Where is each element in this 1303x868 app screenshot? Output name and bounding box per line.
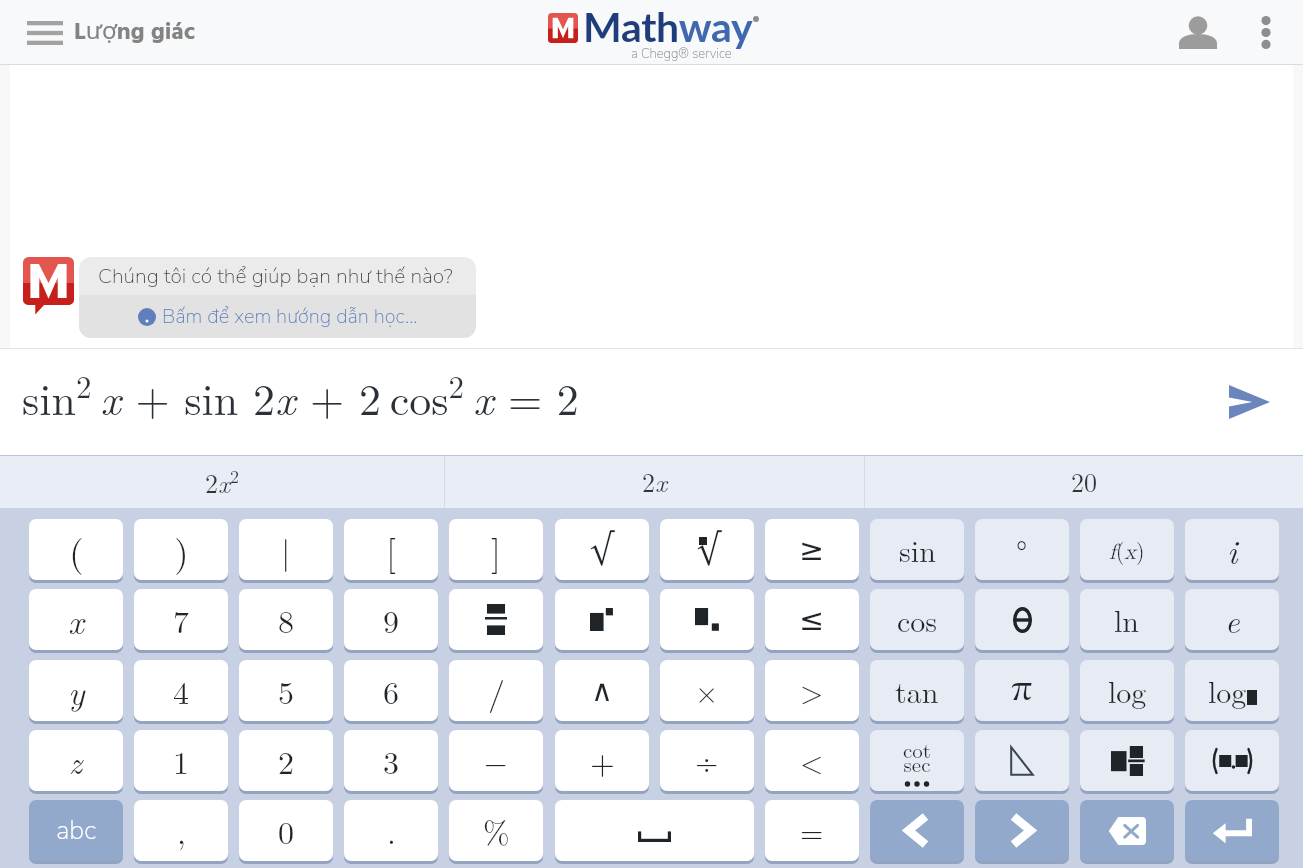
button[interactable]: ln <box>1080 589 1174 650</box>
staticText: 3 <box>383 738 400 783</box>
button[interactable]: ≤ <box>765 589 859 650</box>
button[interactable]: Triangle <box>975 730 1069 791</box>
staticText: sin <box>899 528 936 571</box>
staticText: √ <box>590 535 614 565</box>
button[interactable]: √ <box>555 519 649 580</box>
staticText: ) <box>174 523 189 577</box>
staticText: [ <box>386 524 397 575</box>
staticText: 8 <box>278 597 295 642</box>
staticText: e <box>1225 597 1240 642</box>
staticText: Chúng tôi có thể giúp bạn như thế nào? <box>98 262 453 291</box>
button[interactable]: > <box>765 660 859 721</box>
button[interactable]: . <box>344 800 438 861</box>
staticText: > <box>800 669 824 712</box>
staticText: cot sec <box>903 734 931 778</box>
staticText: 2 <box>278 738 295 783</box>
staticText: f(x) <box>1109 534 1145 565</box>
button[interactable]: i <box>1185 519 1279 580</box>
button[interactable]: Point <box>1185 730 1279 791</box>
button[interactable]: × <box>660 660 754 721</box>
button[interactable]: , <box>134 800 228 861</box>
button[interactable]: f(x) <box>1080 519 1174 580</box>
button[interactable]: 2 <box>239 730 333 791</box>
staticText: 1 <box>173 738 190 783</box>
staticText: = <box>800 809 824 852</box>
staticText: π <box>1011 673 1033 709</box>
button[interactable]: 2x2 <box>0 455 444 508</box>
button[interactable]: 8 <box>239 589 333 650</box>
button[interactable]: ÷ <box>660 730 754 791</box>
button[interactable]: x <box>29 589 123 650</box>
button[interactable]: Send <box>1214 367 1284 437</box>
button[interactable]: Lượng giác <box>0 5 209 60</box>
button[interactable]: ( <box>29 519 123 580</box>
staticText: . <box>387 808 396 853</box>
button[interactable]: ° <box>975 519 1069 580</box>
button[interactable]: More options <box>1240 0 1292 65</box>
staticText: Lượng giác <box>74 13 195 52</box>
button[interactable]: 0 <box>239 800 333 861</box>
button[interactable] <box>660 589 754 650</box>
button[interactable]: abc <box>29 800 123 861</box>
button[interactable]: cot sec <box>870 730 964 791</box>
button[interactable] <box>555 589 649 650</box>
staticText: cos <box>897 598 938 641</box>
staticText: z <box>69 738 83 783</box>
button[interactable]: 1 <box>134 730 228 791</box>
button[interactable]: % <box>449 800 543 861</box>
button[interactable]: ] <box>449 519 543 580</box>
button[interactable]: 6 <box>344 660 438 721</box>
staticText: 2x2 <box>205 463 240 501</box>
button[interactable]: 9 <box>344 589 438 650</box>
button[interactable]: [ <box>344 519 438 580</box>
staticText: − <box>484 739 508 782</box>
button[interactable]: = <box>765 800 859 861</box>
staticText: 7 <box>173 597 190 642</box>
button[interactable]: / <box>449 660 543 721</box>
button[interactable]: log <box>1185 660 1279 721</box>
button[interactable]: | <box>239 519 333 580</box>
button[interactable]: − <box>449 730 543 791</box>
button[interactable]: e <box>1185 589 1279 650</box>
staticText: < <box>800 739 824 782</box>
button[interactable]: 4 <box>134 660 228 721</box>
staticText: log <box>1108 669 1147 712</box>
button[interactable]: Bấm để xem hướng dẫn học... <box>79 295 476 338</box>
button[interactable]: log <box>1080 660 1174 721</box>
button[interactable]: 3 <box>344 730 438 791</box>
button[interactable] <box>449 589 543 650</box>
button[interactable]: 7 <box>134 589 228 650</box>
button[interactable]: π <box>975 660 1069 721</box>
button[interactable]: Enter <box>1185 800 1279 861</box>
button[interactable]: Backspace <box>1080 800 1174 861</box>
staticText: y <box>68 667 85 715</box>
staticText: + <box>590 738 615 783</box>
button[interactable]: y <box>29 660 123 721</box>
button[interactable]: cos <box>870 589 964 650</box>
button[interactable]: sin <box>870 519 964 580</box>
button[interactable]: 20 <box>865 455 1303 508</box>
button[interactable]: ) <box>134 519 228 580</box>
button[interactable]: Move left <box>870 800 964 861</box>
button[interactable]: Matrix <box>1080 730 1174 791</box>
button[interactable]: Space <box>555 800 754 861</box>
button[interactable]: tan <box>870 660 964 721</box>
button[interactable]: ∧ <box>555 660 649 721</box>
button[interactable]: + <box>555 730 649 791</box>
staticText: 6 <box>383 668 400 713</box>
button[interactable]: < <box>765 730 859 791</box>
button[interactable]: Theta <box>975 589 1069 650</box>
button[interactable]: z <box>29 730 123 791</box>
staticText: ÷ <box>695 739 719 782</box>
button[interactable]: 5 <box>239 660 333 721</box>
staticText: × <box>695 669 719 712</box>
button[interactable]: ≥ <box>765 519 859 580</box>
button[interactable]: √ <box>660 519 754 580</box>
button[interactable]: 2x <box>445 455 864 508</box>
button[interactable]: Move right <box>975 800 1069 861</box>
staticText: i <box>1227 526 1238 574</box>
button[interactable]: Account <box>1166 0 1230 65</box>
staticText: | <box>281 526 291 574</box>
staticText: 9 <box>383 597 400 642</box>
staticText: tan <box>895 669 939 712</box>
